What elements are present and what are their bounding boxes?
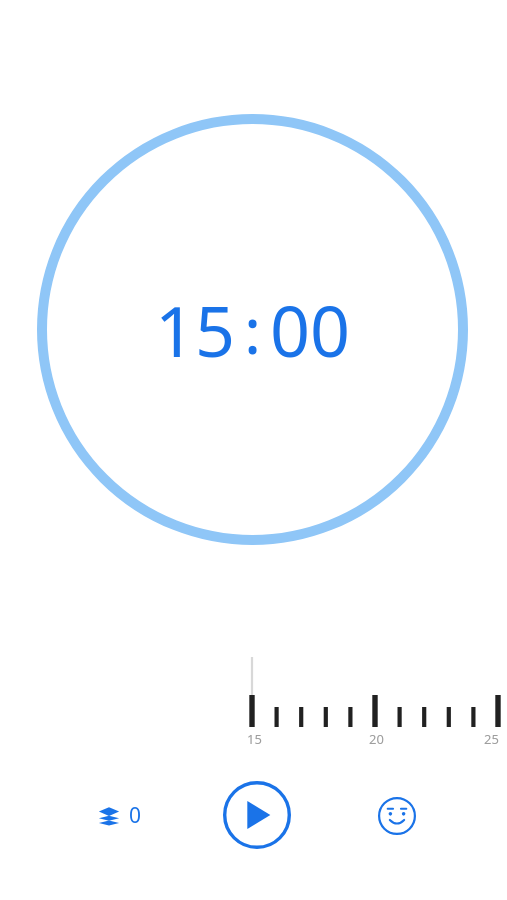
button[interactable]: Mood [378, 797, 416, 835]
staticText: 15 [247, 730, 262, 748]
staticText: 25 [484, 730, 499, 748]
staticText: : [244, 286, 262, 373]
button[interactable]: Rounds [94, 797, 146, 834]
button[interactable]: Duration ruler [0, 650, 507, 750]
staticText: 15 [155, 282, 236, 377]
button[interactable]: 15 [37, 114, 468, 545]
button[interactable]: Start timer [223, 781, 291, 849]
staticText: 20 [369, 730, 384, 748]
other: Rounds [98, 805, 120, 827]
staticText: 00 [270, 282, 351, 377]
staticText: 0 [129, 801, 142, 830]
